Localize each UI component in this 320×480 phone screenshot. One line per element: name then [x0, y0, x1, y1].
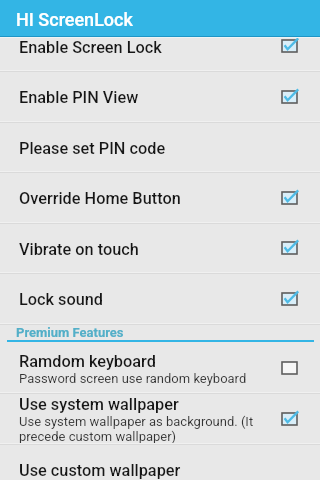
staticText: Enable Screen Lock	[19, 38, 162, 57]
staticText: Ramdom keyboard	[19, 352, 156, 371]
button[interactable]: Ramdom keyboard	[0, 342, 320, 393]
staticText: Use system wallpaper	[19, 395, 179, 414]
staticText: Password screen use random keyboard	[19, 371, 247, 386]
staticText: Premium Features	[16, 325, 124, 340]
button[interactable]: Enable Screen Lock	[0, 21, 320, 71]
staticText: Override Home Button	[19, 189, 181, 208]
button[interactable]: Enable PIN View	[0, 71, 320, 122]
button[interactable]: Use custom wallpaper	[0, 444, 320, 480]
staticText: Vibrate on touch	[19, 240, 139, 259]
staticText: Enable PIN View	[19, 88, 139, 107]
staticText: HI ScreenLock	[16, 9, 133, 30]
button[interactable]: Please set PIN code	[0, 122, 320, 172]
staticText: Use system wallpaper as background. (It …	[19, 414, 254, 444]
staticText: Lock sound	[19, 290, 104, 309]
button[interactable]: Vibrate on touch	[0, 223, 320, 273]
button[interactable]: Override Home Button	[0, 172, 320, 223]
staticText: Please set PIN code	[19, 139, 166, 158]
button[interactable]: Use system wallpaper	[0, 393, 320, 444]
staticText: Use custom wallpaper	[19, 461, 181, 480]
button[interactable]: Lock sound	[0, 273, 320, 324]
